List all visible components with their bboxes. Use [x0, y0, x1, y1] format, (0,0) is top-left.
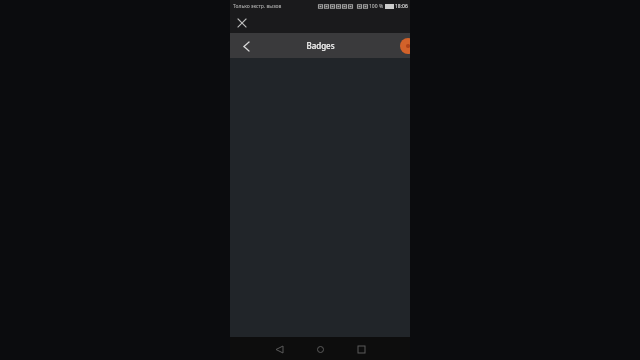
button[interactable]: Back [238, 38, 254, 54]
button[interactable]: Close [234, 15, 250, 31]
staticText: 18:06 [395, 3, 408, 10]
staticText: Только экстр. вызов [233, 3, 282, 10]
button[interactable]: Recents [352, 340, 370, 358]
button[interactable]: Home [311, 340, 329, 358]
staticText: Badges [306, 40, 335, 51]
button[interactable]: Back [270, 340, 288, 358]
staticText: 100 % [369, 3, 384, 10]
button[interactable]: Profile [400, 38, 410, 54]
